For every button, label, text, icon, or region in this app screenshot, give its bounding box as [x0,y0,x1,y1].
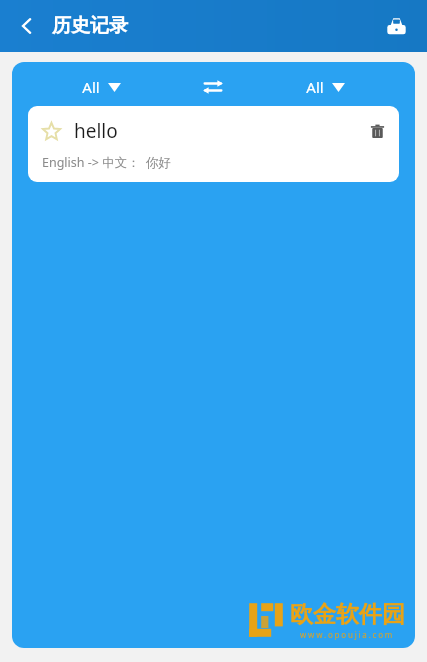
button[interactable]: Delete [361,115,393,147]
staticText: www.opoujia.com [300,629,395,640]
staticText: English -> 中文： [42,154,140,171]
staticText: 你好 [146,155,171,171]
staticText: All [306,77,324,97]
button[interactable]: Saved translations [375,5,417,47]
staticText: hello [74,118,118,144]
button[interactable]: Favorite [28,106,399,182]
button[interactable]: Back [6,5,48,47]
button[interactable]: Swap languages [191,68,235,106]
button[interactable]: Favorite [36,116,66,146]
button[interactable]: All [298,73,353,101]
staticText: 历史记录 [52,14,128,38]
staticText: All [82,77,100,97]
button[interactable]: All [74,73,129,101]
staticText: 欧金软件园 [290,600,405,629]
